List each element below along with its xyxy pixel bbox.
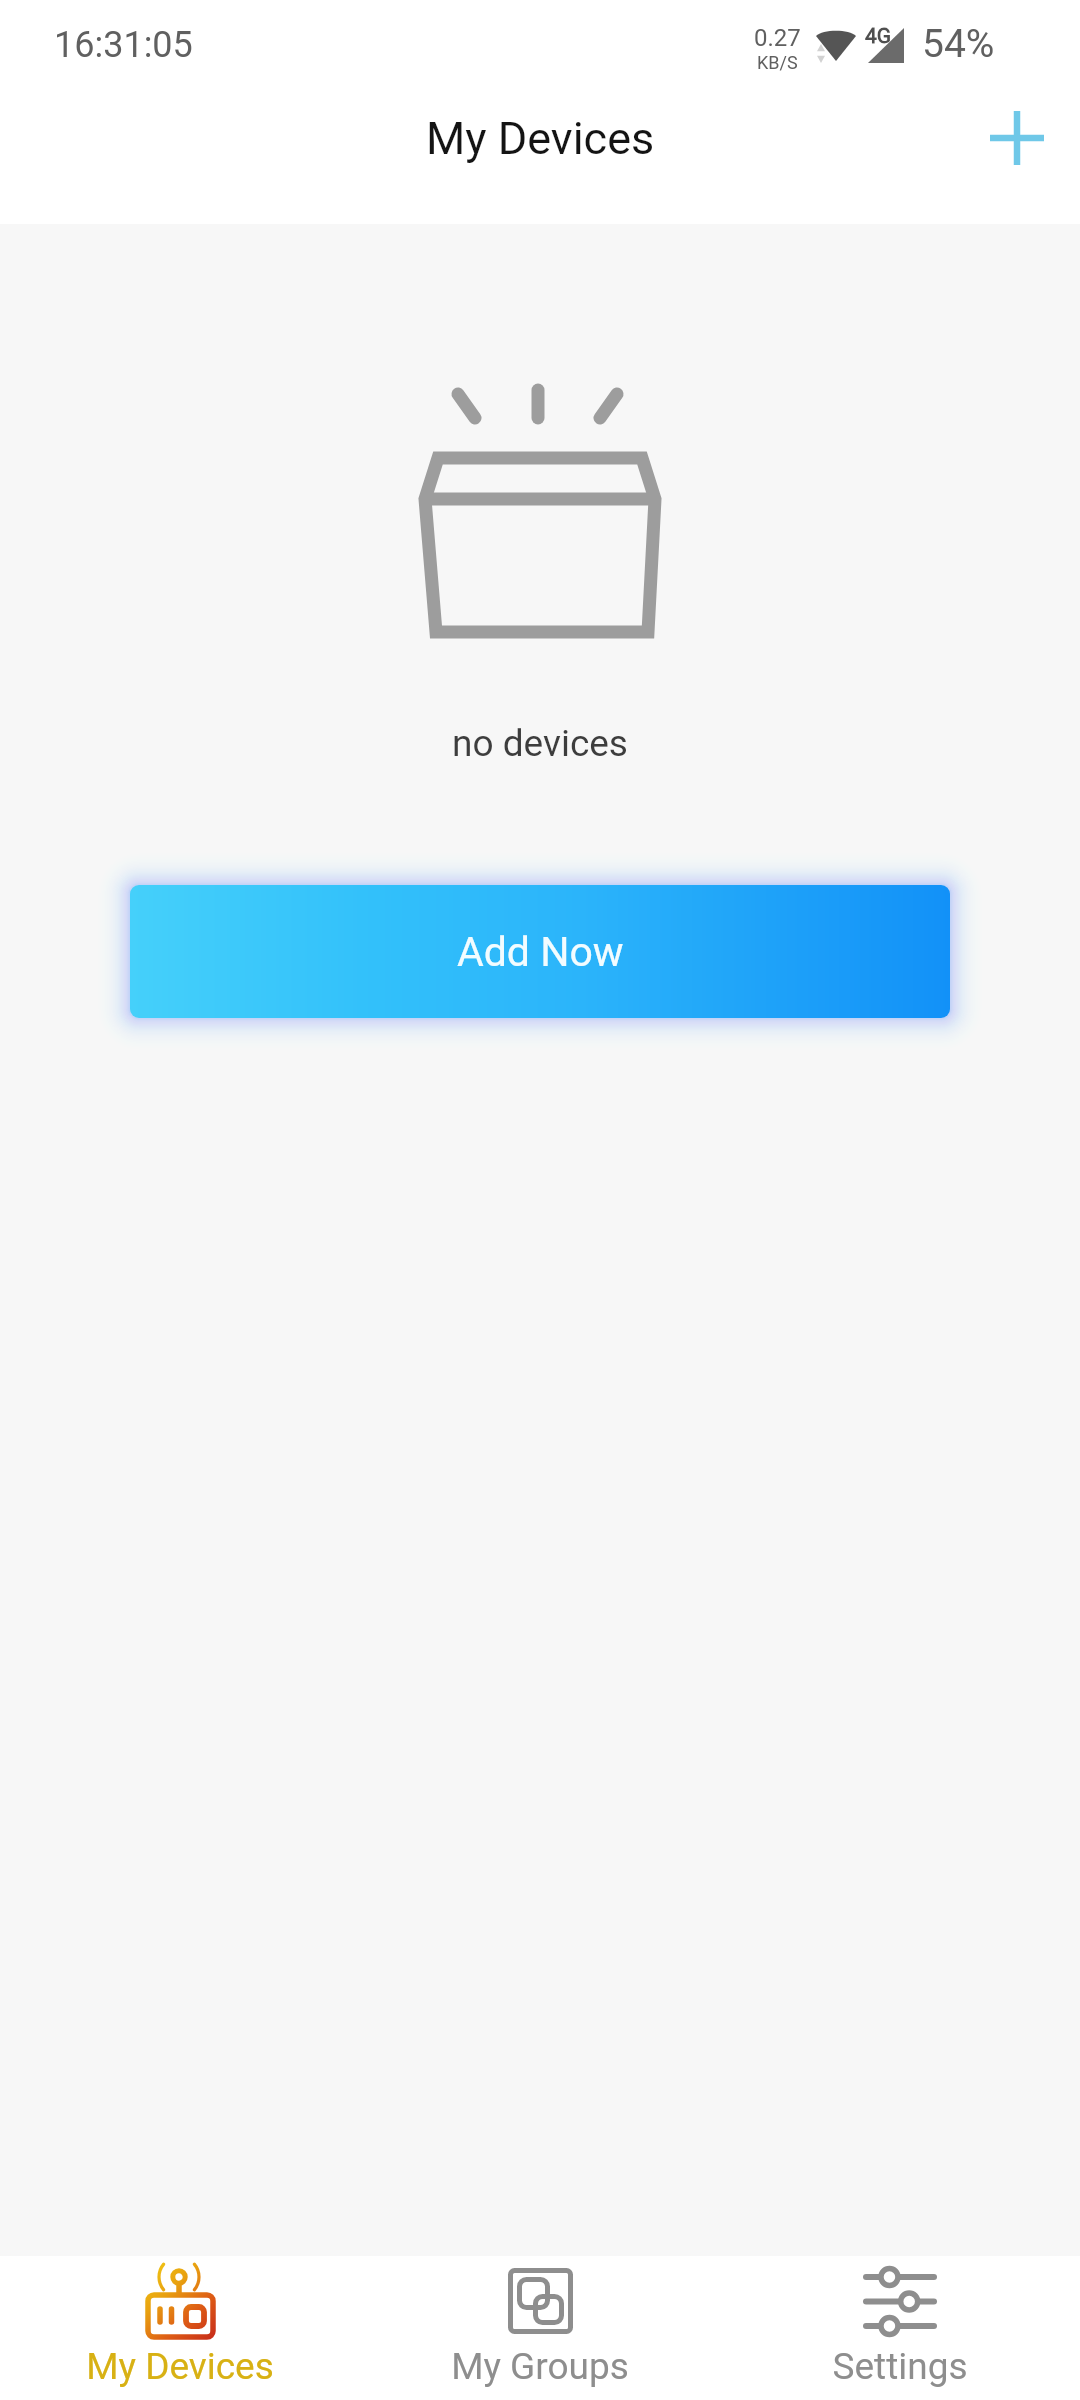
staticText: Settings bbox=[832, 2345, 968, 2388]
button[interactable]: My Devices bbox=[0, 2256, 360, 2400]
staticText: My Groups bbox=[451, 2345, 629, 2388]
staticText: My Devices bbox=[426, 112, 655, 165]
staticText: 16:31:05 bbox=[54, 24, 193, 66]
button[interactable]: Settings bbox=[720, 2256, 1080, 2400]
button[interactable]: My Groups bbox=[360, 2256, 720, 2400]
staticText: no devices bbox=[452, 722, 628, 765]
staticText: KB/S bbox=[757, 52, 798, 73]
staticText: Add Now bbox=[457, 928, 624, 976]
staticText: 4G bbox=[865, 24, 892, 49]
button[interactable]: Add device bbox=[969, 90, 1065, 186]
staticText: 0.27 bbox=[754, 24, 801, 52]
staticText: My Devices bbox=[86, 2345, 274, 2388]
staticText: 54% bbox=[922, 21, 995, 67]
button[interactable]: Add Now bbox=[130, 885, 950, 1018]
